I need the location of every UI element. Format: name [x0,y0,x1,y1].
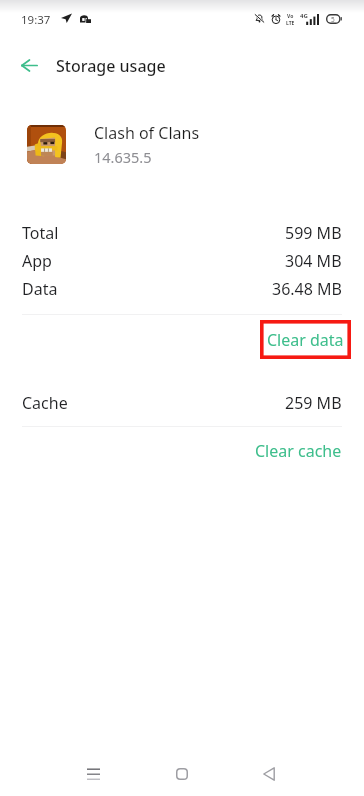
staticText: Clear data [267,329,344,351]
staticText: LTE [286,20,295,27]
button[interactable]: Cache [0,392,364,414]
staticText: 14.635.5 [94,147,152,167]
staticText: 4G [300,12,308,20]
button[interactable]: Total [0,222,364,244]
staticText: 304 MB [285,250,342,272]
staticText: 5 [331,15,335,24]
button[interactable]: App [0,250,364,272]
button[interactable]: Home [137,749,225,796]
staticText: 19:37 [21,12,51,28]
staticText: 259 MB [285,392,342,414]
button[interactable]: Clash of Clans [0,109,364,179]
staticText: Cache [22,392,68,414]
button[interactable]: Clear data [260,320,351,359]
button[interactable]: Clear cache [255,440,342,462]
staticText: Clear cache [255,440,342,462]
button[interactable]: Recent apps [50,749,137,796]
staticText: Clash of Clans [94,122,200,144]
staticText: Vo [287,13,294,20]
button[interactable]: Back [12,48,46,82]
staticText: Total [22,222,59,244]
button[interactable]: Data [0,278,364,300]
staticText: 36.48 MB [272,278,342,300]
button[interactable]: Back [225,749,313,796]
staticText: Data [22,278,58,300]
staticText: 599 MB [285,222,342,244]
staticText: Storage usage [56,55,166,77]
staticText: App [22,250,52,272]
